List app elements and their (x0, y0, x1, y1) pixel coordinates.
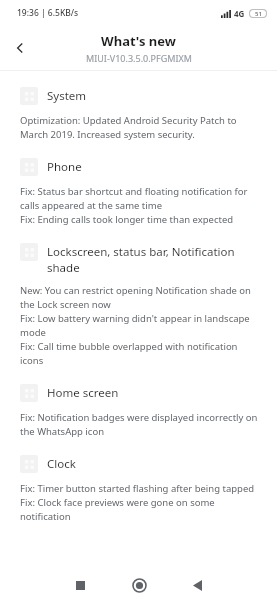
staticText: Fix: Status bar shortcut and floating no… (20, 185, 261, 226)
button[interactable]: Recents (62, 570, 98, 600)
staticText: Phone (47, 159, 82, 175)
button[interactable]: System (0, 87, 277, 158)
staticText: 4G (234, 8, 245, 19)
button[interactable]: Lockscreen, status bar, Notification sha… (0, 243, 277, 384)
staticText: New: You can restrict opening Notificati… (20, 284, 261, 367)
staticText: Home screen (47, 385, 119, 401)
staticText: 51 (255, 10, 262, 17)
staticText: Lockscreen, status bar, Notification sha… (47, 244, 261, 275)
button[interactable]: Home (121, 570, 157, 600)
button[interactable]: Home screen (0, 384, 277, 455)
staticText: Clock (47, 456, 76, 472)
button[interactable]: Back (179, 570, 215, 600)
button[interactable]: Clock (0, 455, 277, 540)
staticText: 19:36 | 6.5KB/s (17, 7, 79, 19)
staticText: System (47, 88, 87, 104)
staticText: MIUI-V10.3.5.0.PFGMIXM (86, 52, 192, 64)
staticText: Optimization: Updated Android Security P… (20, 114, 261, 141)
staticText: Fix: Notification badges were displayed … (20, 411, 261, 438)
button[interactable]: Phone (0, 158, 277, 243)
button[interactable]: Back (0, 28, 40, 68)
staticText: Fix: Timer button started flashing after… (20, 482, 261, 523)
staticText: What's new (101, 32, 176, 50)
